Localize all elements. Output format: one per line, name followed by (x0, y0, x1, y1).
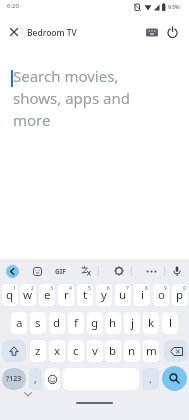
button[interactable] (2, 340, 26, 362)
staticText: . (149, 372, 152, 386)
button[interactable] (29, 263, 45, 279)
button[interactable]: v (87, 340, 103, 362)
staticText: i (141, 287, 144, 303)
staticText: h (109, 315, 117, 331)
staticText: e (44, 287, 51, 303)
staticText: q (6, 287, 14, 303)
button[interactable]: t (77, 284, 93, 306)
button[interactable] (164, 340, 188, 362)
staticText: 6:20 (7, 2, 19, 10)
staticText: p (176, 287, 184, 303)
staticText: 2 (31, 285, 34, 292)
button[interactable]: a (11, 312, 27, 334)
button[interactable]: h (105, 312, 121, 334)
staticText: 8 (145, 285, 148, 292)
staticText: , (34, 372, 37, 386)
button[interactable]: GIF (52, 263, 68, 279)
staticText: c (73, 343, 79, 359)
staticText: Search movies, shows, apps and more (13, 66, 130, 131)
button[interactable]: m (143, 340, 159, 362)
staticText: b (109, 343, 117, 359)
staticText: GIF (55, 267, 66, 276)
button[interactable] (6, 265, 19, 278)
button[interactable]: d (49, 312, 65, 334)
button[interactable] (5, 23, 23, 41)
button[interactable] (143, 23, 160, 41)
staticText: ?123 (6, 374, 22, 384)
staticText: g (91, 315, 99, 331)
button[interactable] (45, 368, 60, 390)
staticText: o (158, 287, 165, 303)
button[interactable]: s (30, 312, 46, 334)
staticText: 1 (13, 285, 16, 292)
staticText: n (128, 343, 136, 359)
staticText: t (83, 287, 88, 303)
staticText: 7 (126, 285, 129, 292)
button[interactable]: x (49, 340, 65, 362)
staticText: Bedroom TV (27, 27, 77, 39)
staticText: m (146, 343, 157, 359)
button[interactable] (169, 263, 185, 279)
staticText: v (92, 343, 98, 359)
staticText: 6 (107, 285, 110, 292)
button[interactable]: w (20, 284, 36, 306)
staticText: f (74, 315, 78, 331)
staticText: x (54, 343, 61, 359)
staticText: 3 (50, 285, 53, 292)
button[interactable]: u (115, 284, 131, 306)
button[interactable]: ?123 (2, 368, 26, 390)
staticText: 5 (88, 285, 91, 292)
button[interactable]: b (105, 340, 121, 362)
button[interactable] (163, 23, 181, 41)
staticText: d (53, 315, 61, 331)
staticText: y (101, 287, 107, 303)
button[interactable]: , (29, 368, 42, 390)
staticText: s (35, 315, 41, 331)
button[interactable]: y (96, 284, 112, 306)
staticText: 9 (164, 285, 167, 292)
staticText: k (148, 315, 155, 331)
button[interactable]: k (143, 312, 159, 334)
button[interactable]: c (68, 340, 84, 362)
button[interactable]: p (172, 284, 188, 306)
staticText: 93% (168, 3, 180, 11)
button[interactable]: j (124, 312, 140, 334)
staticText: 0 (183, 285, 186, 292)
staticText: r (64, 287, 69, 303)
staticText: a (16, 315, 23, 331)
button[interactable]: n (124, 340, 140, 362)
staticText: z (35, 343, 41, 359)
staticText: j (131, 315, 134, 331)
button[interactable]: g (87, 312, 103, 334)
button[interactable]: q (2, 284, 18, 306)
staticText: 4 (69, 285, 72, 292)
button[interactable]: . (142, 368, 159, 390)
button[interactable] (162, 366, 187, 391)
button[interactable]: f (68, 312, 84, 334)
button[interactable]: i (134, 284, 150, 306)
button[interactable] (111, 263, 127, 279)
staticText: l (169, 315, 172, 331)
button[interactable] (143, 263, 159, 279)
button[interactable]: o (153, 284, 169, 306)
button[interactable]: z (30, 340, 46, 362)
button[interactable] (78, 263, 94, 279)
staticText: u (119, 287, 127, 303)
staticText: w (23, 287, 33, 303)
button[interactable]: e (39, 284, 55, 306)
button[interactable]: l (162, 312, 178, 334)
button[interactable]: r (58, 284, 74, 306)
